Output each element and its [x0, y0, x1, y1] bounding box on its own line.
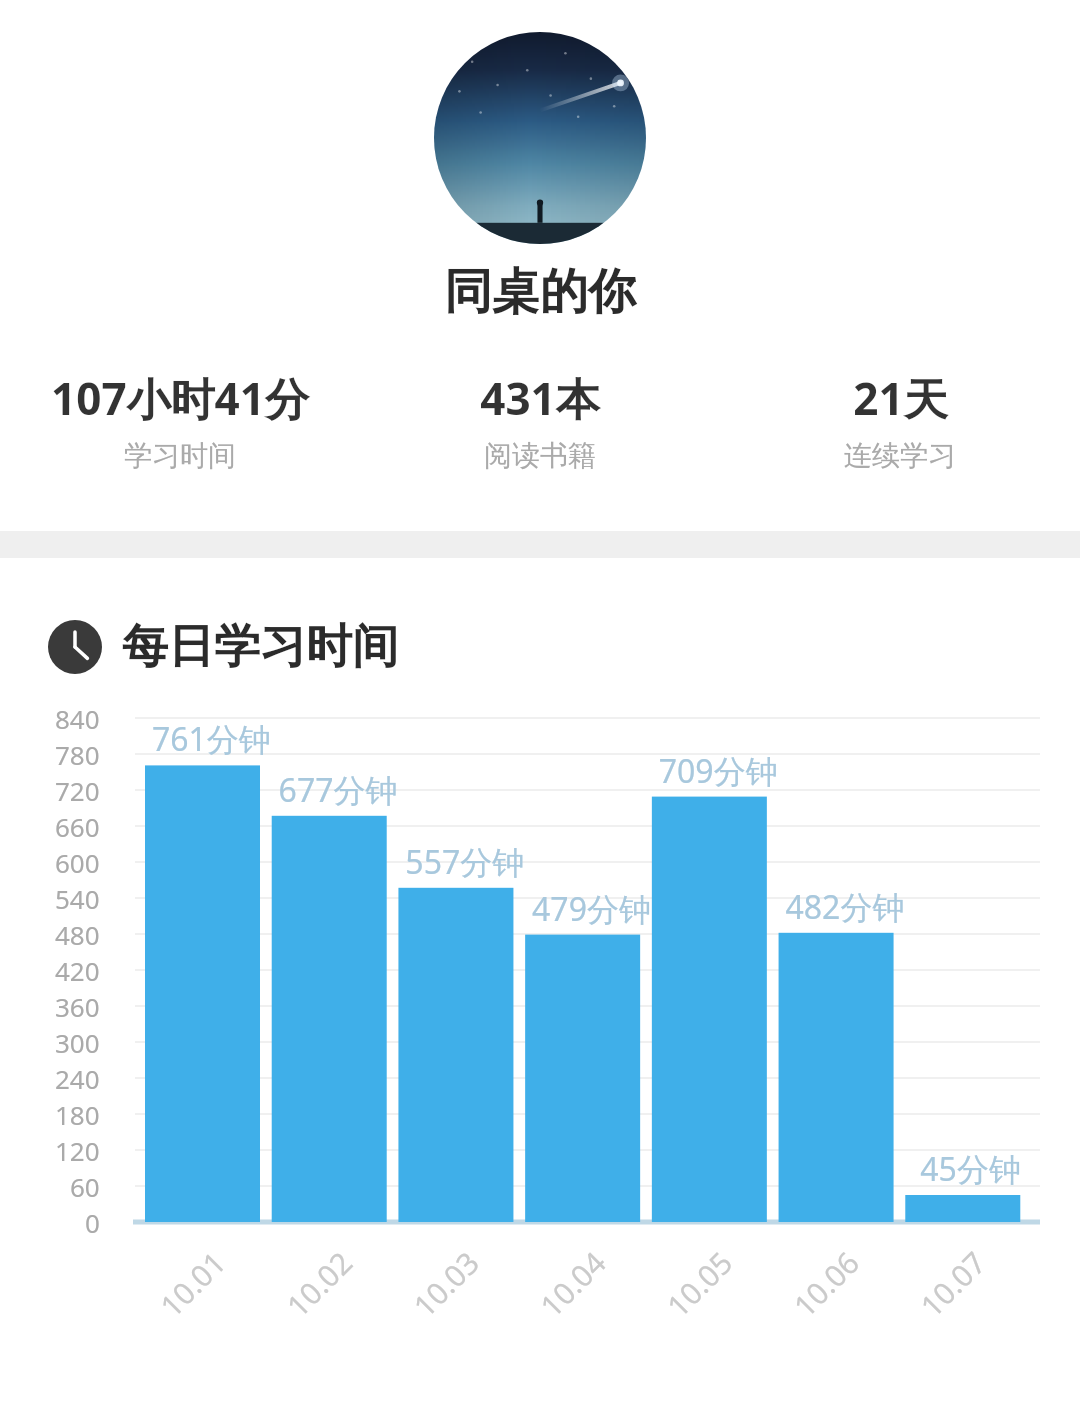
- staticText: 107小时41分: [51, 368, 309, 428]
- staticText: 连续学习: [844, 438, 956, 473]
- staticText: 21天: [853, 368, 948, 428]
- staticText: 阅读书籍: [484, 438, 596, 473]
- staticText: 学习时间: [124, 438, 236, 473]
- staticText: 每日学习时间: [122, 618, 398, 676]
- button[interactable]: 21天: [720, 368, 1080, 473]
- button[interactable]: 107小时41分: [0, 368, 360, 473]
- other: Daily study time: [48, 620, 102, 674]
- staticText: 431本: [480, 368, 600, 428]
- button[interactable]: Profile photo: [434, 32, 646, 244]
- staticText: 同桌的你: [444, 262, 636, 322]
- button[interactable]: 431本: [360, 368, 720, 473]
- button[interactable]: Daily study time: [48, 618, 1080, 676]
